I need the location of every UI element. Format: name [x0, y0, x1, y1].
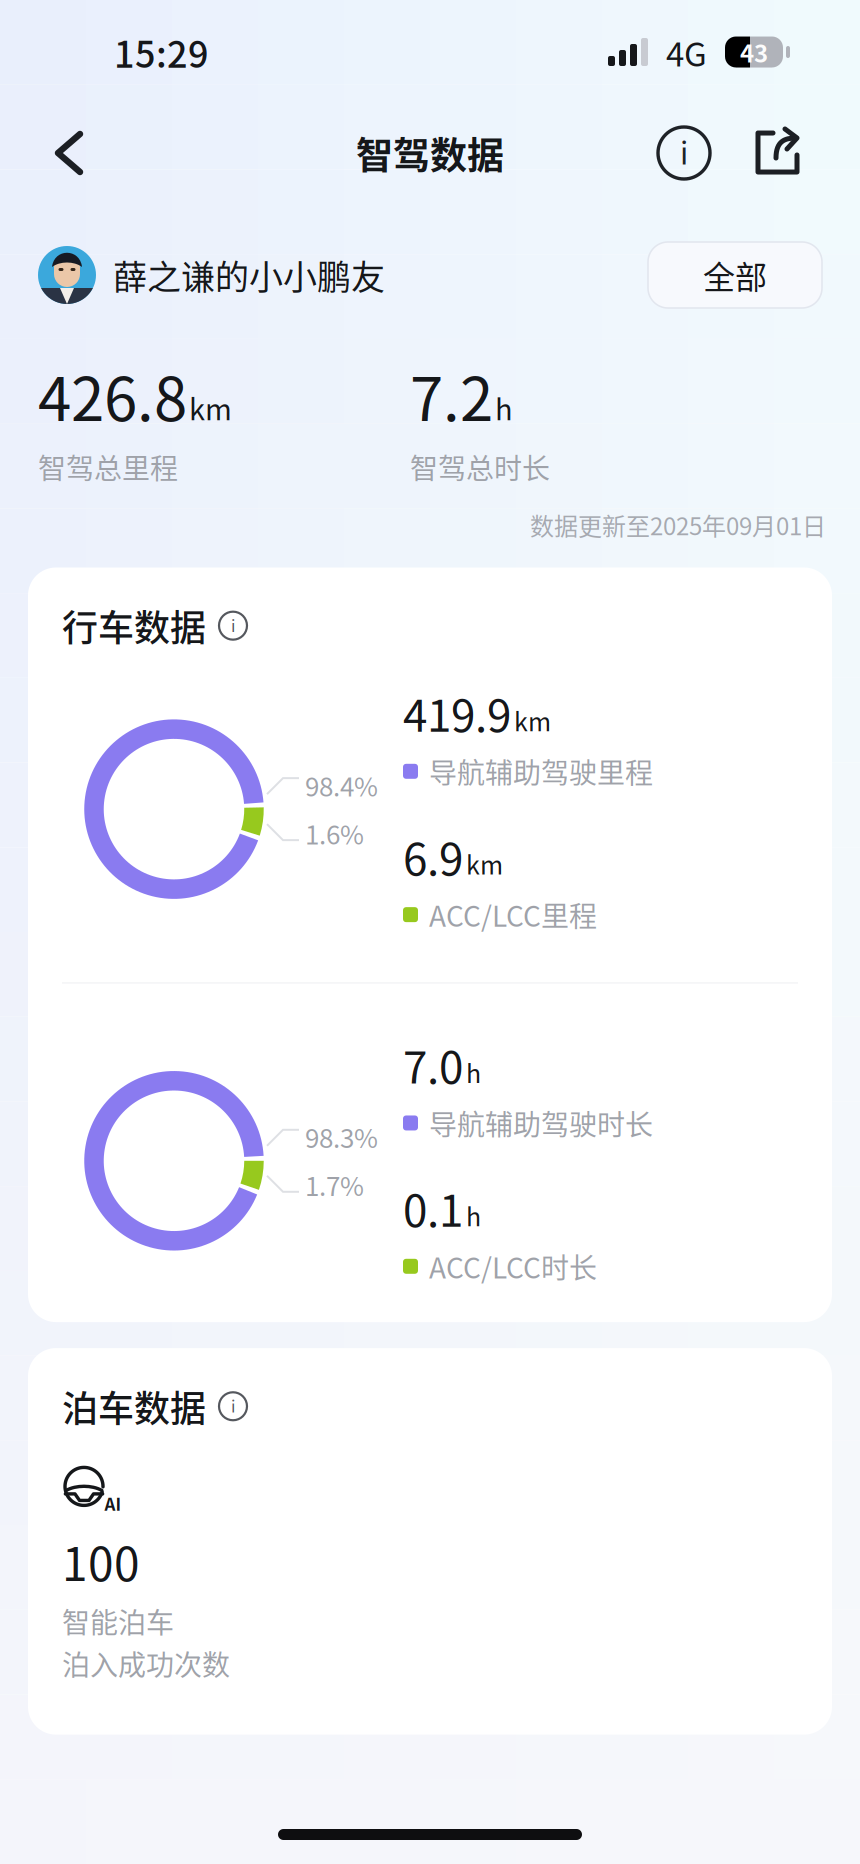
button[interactable]: Info	[658, 127, 710, 179]
staticText: i	[231, 613, 235, 637]
staticText: 15:29	[114, 30, 209, 74]
staticText: 419.9	[403, 688, 511, 737]
staticText: 导航辅助驾驶里程	[429, 755, 653, 787]
staticText: 数据更新至2025年09月01日	[530, 510, 826, 539]
staticText: km	[189, 391, 232, 424]
staticText: i	[680, 130, 688, 173]
staticText: AI	[104, 1494, 121, 1513]
staticText: 7.2	[410, 360, 493, 429]
staticText: 1.7%	[305, 1169, 364, 1201]
staticText: 全部	[703, 255, 767, 295]
staticText: 泊入成功次数	[62, 1646, 230, 1681]
staticText: 智能泊车	[62, 1604, 174, 1638]
staticText: i	[231, 1394, 235, 1417]
staticText: 薛之谦的小小鹏友	[113, 254, 385, 296]
staticText: km	[466, 850, 503, 878]
staticText: 1.6%	[305, 817, 364, 849]
staticText: 98.4%	[305, 769, 378, 801]
staticText: 6.9	[403, 831, 463, 881]
staticText: 98.3%	[305, 1121, 378, 1153]
staticText: 行车数据	[62, 603, 206, 648]
button[interactable]: Back	[52, 129, 86, 177]
staticText: 智驾总里程	[38, 449, 178, 484]
staticText: ACC/LCC时长	[429, 1250, 597, 1282]
staticText: 智驾数据	[356, 130, 504, 176]
staticText: ACC/LCC里程	[429, 899, 597, 930]
staticText: km	[514, 706, 551, 734]
staticText: 43	[740, 35, 768, 69]
button[interactable]: 全部	[648, 242, 822, 308]
staticText: h	[466, 1058, 481, 1086]
staticText: 导航辅助驾驶时长	[429, 1107, 653, 1139]
staticText: 426.8	[38, 360, 187, 429]
staticText: 0.1	[403, 1183, 463, 1232]
staticText: 智驾总时长	[410, 449, 550, 484]
button[interactable]: Share	[754, 129, 802, 177]
staticText: 100	[62, 1534, 140, 1588]
staticText: h	[495, 391, 513, 424]
staticText: 7.0	[403, 1039, 463, 1089]
staticText: 泊车数据	[62, 1384, 206, 1428]
staticText: h	[466, 1201, 481, 1229]
staticText: 4G	[666, 32, 707, 72]
